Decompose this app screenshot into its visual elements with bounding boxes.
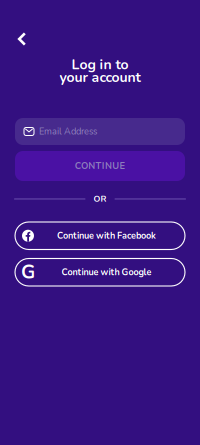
staticText: CONTINUE [75, 160, 125, 172]
staticText: Continue with Google [61, 266, 151, 278]
button[interactable]: Back [8, 25, 36, 53]
staticText: OR [93, 193, 106, 205]
button[interactable]: G [15, 258, 185, 286]
staticText: Log in to [71, 55, 128, 74]
button[interactable]: Continue with Facebook [15, 222, 185, 249]
button[interactable]: CONTINUE [15, 151, 185, 181]
staticText: G [21, 259, 35, 285]
staticText: your account [59, 68, 140, 87]
staticText: Email Address [39, 125, 97, 138]
staticText: Continue with Facebook [57, 230, 156, 242]
